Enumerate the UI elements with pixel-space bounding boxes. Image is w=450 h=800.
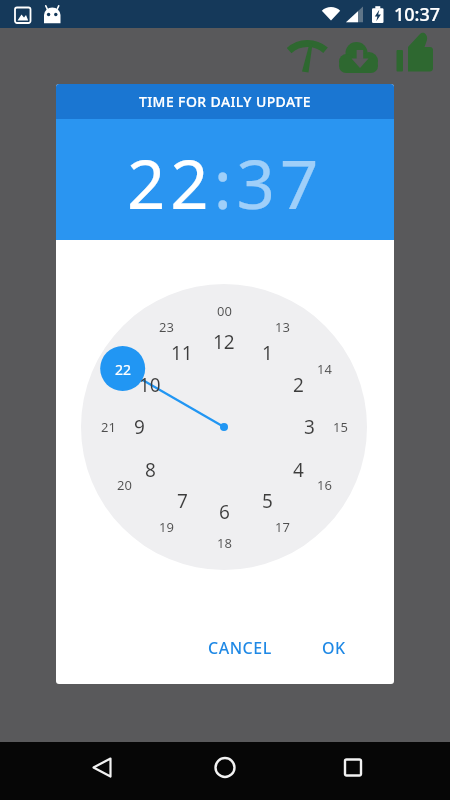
staticText: 6 xyxy=(219,499,230,525)
button[interactable] xyxy=(70,742,134,800)
staticText: OK xyxy=(322,637,346,659)
staticText: 7 xyxy=(177,488,188,514)
staticText: 21 xyxy=(101,418,116,436)
staticText: 9 xyxy=(134,414,145,440)
button[interactable] xyxy=(193,742,257,800)
button[interactable]: CANCEL xyxy=(185,625,295,671)
staticText: 20 xyxy=(117,476,132,494)
staticText: 3 xyxy=(304,414,315,440)
staticText: TIME FOR DAILY UPDATE xyxy=(139,92,312,111)
staticText: 22:37 xyxy=(127,137,324,228)
staticText: 12 xyxy=(213,329,235,355)
staticText: 23 xyxy=(159,318,174,336)
staticText: 22 xyxy=(115,360,132,379)
staticText: 10 xyxy=(139,372,161,398)
staticText: 1 xyxy=(262,340,273,366)
staticText: 13 xyxy=(275,318,290,336)
staticText: 17 xyxy=(275,518,290,536)
button[interactable] xyxy=(321,742,385,800)
staticText: 10:37 xyxy=(394,2,441,27)
staticText: 2 xyxy=(293,372,304,398)
staticText: 8 xyxy=(145,457,156,483)
staticText: 00 xyxy=(217,302,232,320)
staticText: 19 xyxy=(159,518,174,536)
staticText: 5 xyxy=(262,488,273,514)
staticText: CANCEL xyxy=(208,637,272,659)
staticText: 4 xyxy=(293,457,304,483)
staticText: 18 xyxy=(217,534,232,552)
staticText: 11 xyxy=(171,340,193,366)
staticText: 15 xyxy=(333,418,348,436)
button[interactable]: OK xyxy=(299,625,369,671)
staticText: 14 xyxy=(317,360,332,378)
staticText: 16 xyxy=(317,476,332,494)
